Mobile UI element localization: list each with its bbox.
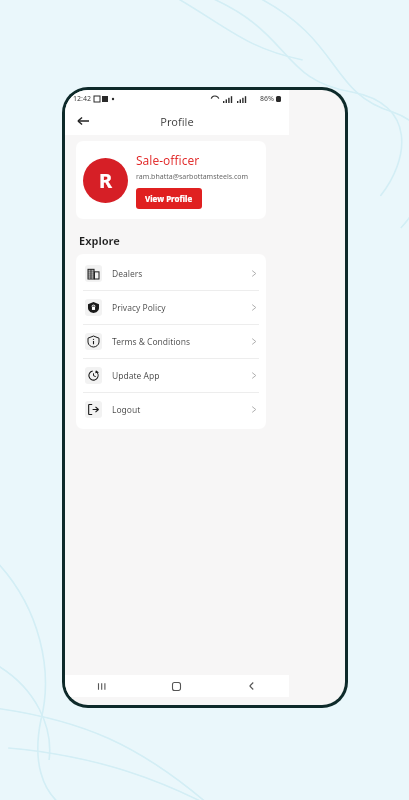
button[interactable]: Privacy Policy	[76, 291, 266, 325]
button[interactable]: Recents	[65, 675, 139, 697]
button[interactable]: Logout	[76, 393, 266, 426]
button[interactable]: Back	[214, 675, 289, 697]
staticText: Logout	[112, 404, 251, 416]
button[interactable]: View Profile	[136, 188, 202, 209]
staticText: Dealers	[112, 268, 251, 280]
staticText: Update App	[112, 370, 251, 382]
button[interactable]: Back	[73, 111, 93, 131]
staticText: R	[99, 167, 113, 194]
staticText: Privacy Policy	[112, 302, 251, 314]
staticText: Sale-officer	[136, 152, 200, 168]
button[interactable]: Dealers	[76, 257, 266, 291]
staticText: View Profile	[145, 193, 193, 204]
staticText: Terms & Conditions	[112, 336, 251, 348]
staticText: 12:42	[73, 94, 91, 104]
staticText: ram.bhatta@sarbottamsteels.com	[136, 172, 249, 182]
button[interactable]: R	[76, 141, 266, 219]
button[interactable]: Terms & Conditions	[76, 325, 266, 359]
staticText: 86%	[260, 94, 274, 104]
button[interactable]: Update App	[76, 359, 266, 393]
staticText: Profile	[160, 114, 194, 129]
staticText: Explore	[79, 233, 120, 248]
button[interactable]: Home	[139, 675, 214, 697]
